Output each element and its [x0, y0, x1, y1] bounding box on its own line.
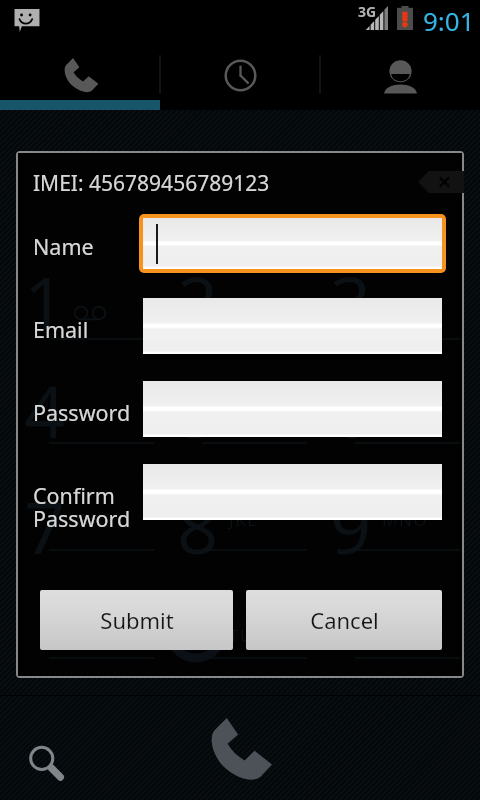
button[interactable]: Call	[200, 709, 280, 789]
staticText: 1	[24, 252, 66, 350]
staticText: Confirm Password	[33, 481, 131, 534]
button[interactable]	[143, 464, 442, 520]
other: New message	[14, 9, 40, 32]
button[interactable]	[143, 381, 442, 437]
staticText: MNO	[382, 508, 429, 531]
staticText: 8	[177, 477, 219, 575]
staticText: JKL	[229, 508, 258, 531]
staticText: 9	[330, 477, 372, 575]
staticText: 4	[24, 361, 66, 459]
staticText: DEF	[382, 399, 418, 422]
button[interactable]	[143, 298, 442, 354]
staticText: PQRS	[76, 624, 126, 647]
staticText: ABC	[229, 399, 267, 422]
staticText: Password	[33, 398, 131, 427]
staticText: Cancel	[310, 605, 379, 635]
staticText: 3G	[358, 2, 377, 21]
staticText: 3	[330, 252, 372, 350]
staticText: 5	[177, 361, 219, 459]
button[interactable]	[139, 214, 446, 273]
staticText: 9:01	[423, 3, 475, 38]
staticText: 7	[24, 477, 66, 575]
button[interactable]: Cancel	[246, 590, 442, 650]
button[interactable]: Call log	[160, 38, 320, 110]
button[interactable]: Submit	[40, 590, 233, 650]
staticText: IMEI: 456789456789123	[33, 169, 270, 198]
staticText: Name	[33, 232, 94, 261]
button[interactable]: Dial pad	[0, 38, 160, 110]
staticText: 6	[330, 361, 372, 459]
button[interactable]: Search	[22, 739, 72, 789]
staticText: Submit	[100, 605, 174, 635]
staticText: 2	[177, 252, 219, 350]
staticText: Email	[33, 315, 89, 344]
staticText: GHI	[76, 508, 112, 531]
button[interactable]: Backspace	[418, 171, 464, 193]
staticText: TUV	[229, 624, 266, 647]
button[interactable]: Contacts	[320, 38, 480, 110]
